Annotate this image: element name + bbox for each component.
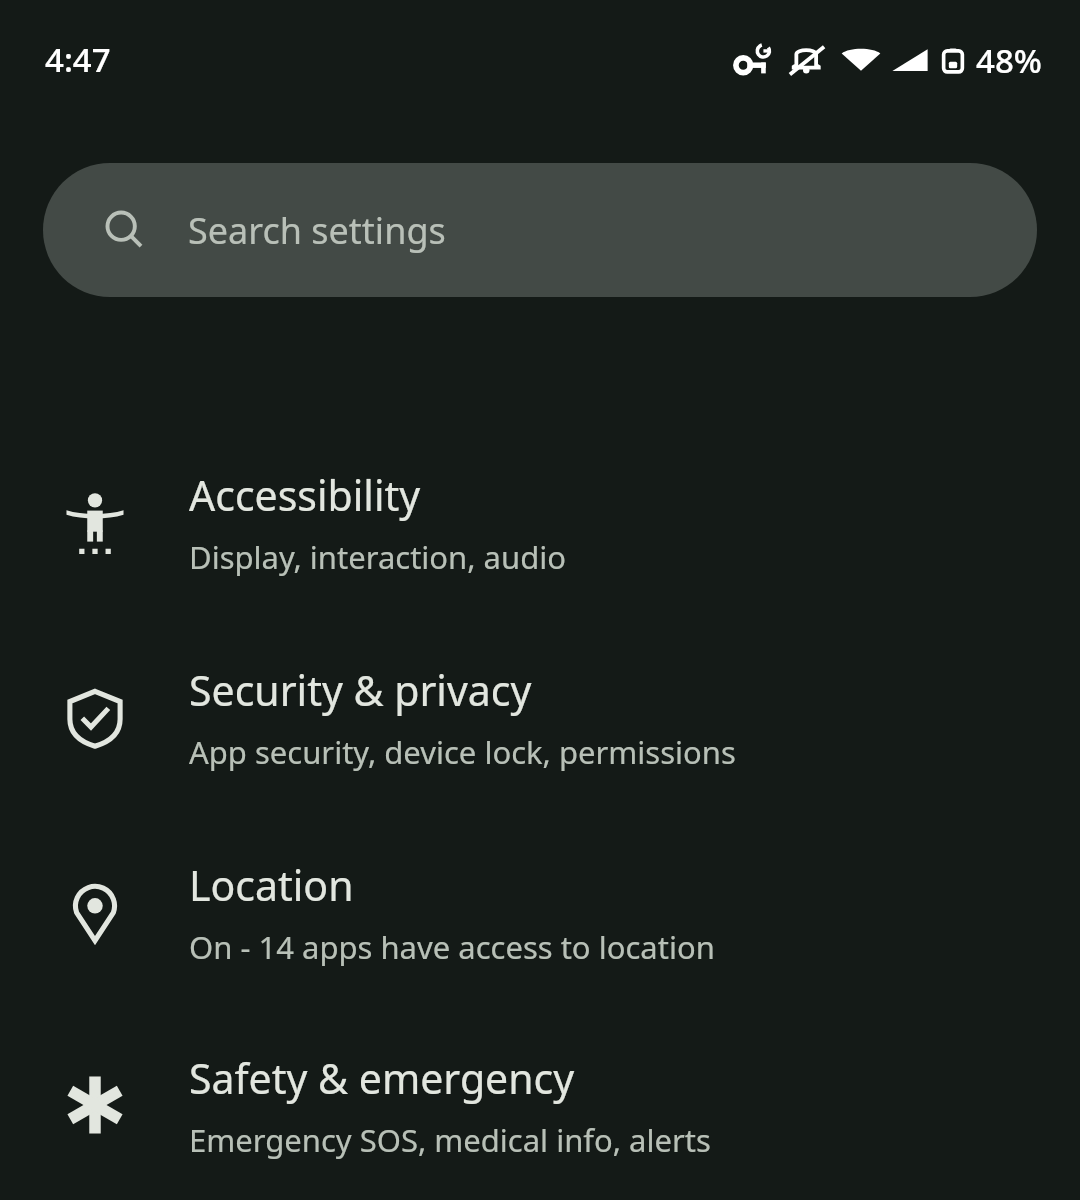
- staticText: Display, interaction, audio: [189, 536, 566, 578]
- staticText: Accessibility: [189, 467, 421, 523]
- staticText: Security & privacy: [189, 662, 532, 718]
- button[interactable]: Accessibility: [0, 425, 1080, 620]
- button[interactable]: Location: [0, 815, 1080, 1010]
- button[interactable]: Safety and emergency: [0, 1010, 1080, 1200]
- staticText: Safety & emergency: [189, 1050, 575, 1106]
- staticText: Search settings: [188, 206, 446, 255]
- button[interactable]: Security and privacy: [0, 620, 1080, 815]
- button[interactable]: Search settings: [43, 163, 1037, 297]
- other: Accessibility: [64, 492, 126, 554]
- other: Safety and emergency: [64, 1074, 126, 1136]
- staticText: 4:47: [45, 37, 111, 82]
- staticText: On - 14 apps have access to location: [189, 926, 715, 968]
- staticText: 48%: [976, 38, 1042, 83]
- other: Security and privacy: [64, 687, 126, 749]
- staticText: Emergency SOS, medical info, alerts: [189, 1119, 711, 1161]
- staticText: Location: [189, 857, 354, 913]
- staticText: App security, device lock, permissions: [189, 731, 736, 773]
- other: Location: [64, 882, 126, 944]
